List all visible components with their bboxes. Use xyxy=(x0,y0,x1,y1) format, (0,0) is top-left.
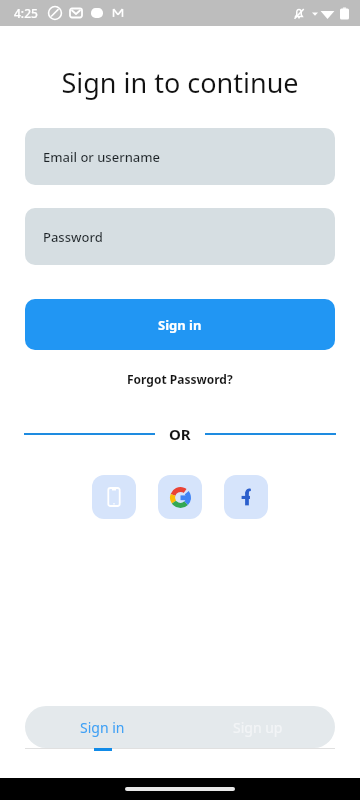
staticText: 4:25 xyxy=(14,5,38,21)
button[interactable]: Sign in with phone xyxy=(92,475,136,519)
button[interactable]: Sign in xyxy=(25,706,180,748)
staticText: Sign in xyxy=(80,718,125,737)
button[interactable]: Sign up xyxy=(180,706,335,748)
button[interactable]: Forgot Password? xyxy=(121,369,239,389)
staticText: Email or username xyxy=(43,148,161,166)
staticText: Sign in to continue xyxy=(0,64,360,101)
button[interactable]: Password xyxy=(25,208,335,265)
staticText: Sign in xyxy=(158,316,202,334)
button[interactable]: Sign in xyxy=(25,299,335,350)
button[interactable]: Sign in with Google xyxy=(158,475,202,519)
staticText: Password xyxy=(43,228,103,246)
button[interactable]: Email or username xyxy=(25,128,335,185)
staticText: OR xyxy=(169,424,191,444)
staticText: Sign up xyxy=(233,718,283,737)
button[interactable]: Sign in with Facebook xyxy=(224,475,268,519)
staticText: Forgot Password? xyxy=(127,371,233,387)
